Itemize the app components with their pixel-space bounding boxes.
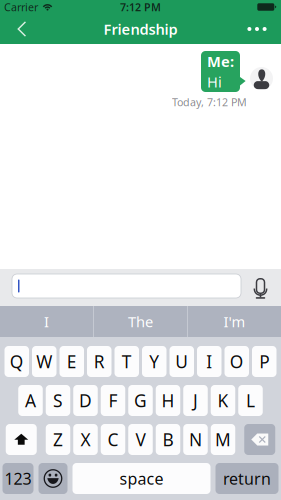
button[interactable]: Shift [6,424,37,455]
button[interactable]: M [211,424,235,455]
staticText: K [217,389,228,412]
button[interactable]: Z [46,424,70,455]
button[interactable]: Delete [244,424,275,455]
staticText: P [259,350,269,373]
button[interactable]: 123 [2,463,33,494]
staticText: B [162,428,173,451]
staticText: F [108,389,117,412]
staticText: The [128,312,153,331]
button[interactable]: Dictate [251,275,270,296]
staticText: A [25,389,36,412]
button[interactable]: return [215,463,278,494]
staticText: Friendship [103,19,177,39]
button[interactable]: U [169,346,194,377]
staticText: Me: [207,51,234,71]
button[interactable]: I'm [188,306,281,337]
staticText: I [206,350,212,373]
button[interactable]: Back [4,14,40,44]
button[interactable]: I [0,306,93,337]
button[interactable]: N [183,424,208,455]
button[interactable]: space [72,463,210,494]
staticText: S [53,389,63,412]
staticText: C [107,428,118,451]
button[interactable]: D [73,385,98,416]
staticText: J [193,389,198,412]
staticText: T [122,350,132,373]
staticText: L [246,389,255,412]
button[interactable]: J [183,385,208,416]
button[interactable]: More options [237,14,277,44]
staticText: Today, 7:12 PM [172,95,247,109]
button[interactable]: F [101,385,125,416]
button[interactable]: Y [142,346,166,377]
button[interactable]: The [94,306,187,337]
staticText: U [175,350,188,373]
staticText: Y [149,350,159,373]
staticText: 123 [4,468,31,489]
button[interactable]: P [252,346,276,377]
staticText: space [119,468,163,489]
staticText: Q [10,350,24,373]
button[interactable]: X [73,424,98,455]
button[interactable]: O [224,346,249,377]
staticText: M [215,428,231,451]
button[interactable]: H [156,385,180,416]
staticText: 7:12 PM [120,0,161,14]
staticText: G [134,389,147,412]
staticText: H [161,389,174,412]
staticText: R [94,350,105,373]
button[interactable]: V [128,424,153,455]
staticText: W [36,350,52,373]
staticText: O [230,350,244,373]
button[interactable]: C [101,424,125,455]
staticText: D [79,389,92,412]
staticText: Carrier [4,0,38,14]
staticText: N [189,428,202,451]
button[interactable]: G [128,385,153,416]
button[interactable]: W [32,346,56,377]
staticText: E [67,350,77,373]
staticText: X [80,428,90,451]
button[interactable]: B [156,424,180,455]
button[interactable]: K [211,385,235,416]
staticText: I [44,312,49,331]
button[interactable]: S [46,385,70,416]
button[interactable]: Q [4,346,29,377]
staticText: I'm [223,312,245,331]
staticText: return [223,468,271,489]
button[interactable]: T [114,346,139,377]
button[interactable]: E [59,346,84,377]
button[interactable]: A [18,385,43,416]
button[interactable]: I [197,346,221,377]
staticText: Z [53,428,63,451]
staticText: V [135,428,145,451]
button[interactable]: R [87,346,111,377]
button[interactable]: Emoji [38,463,67,494]
button[interactable]: L [238,385,263,416]
staticText: Hi [207,72,222,91]
